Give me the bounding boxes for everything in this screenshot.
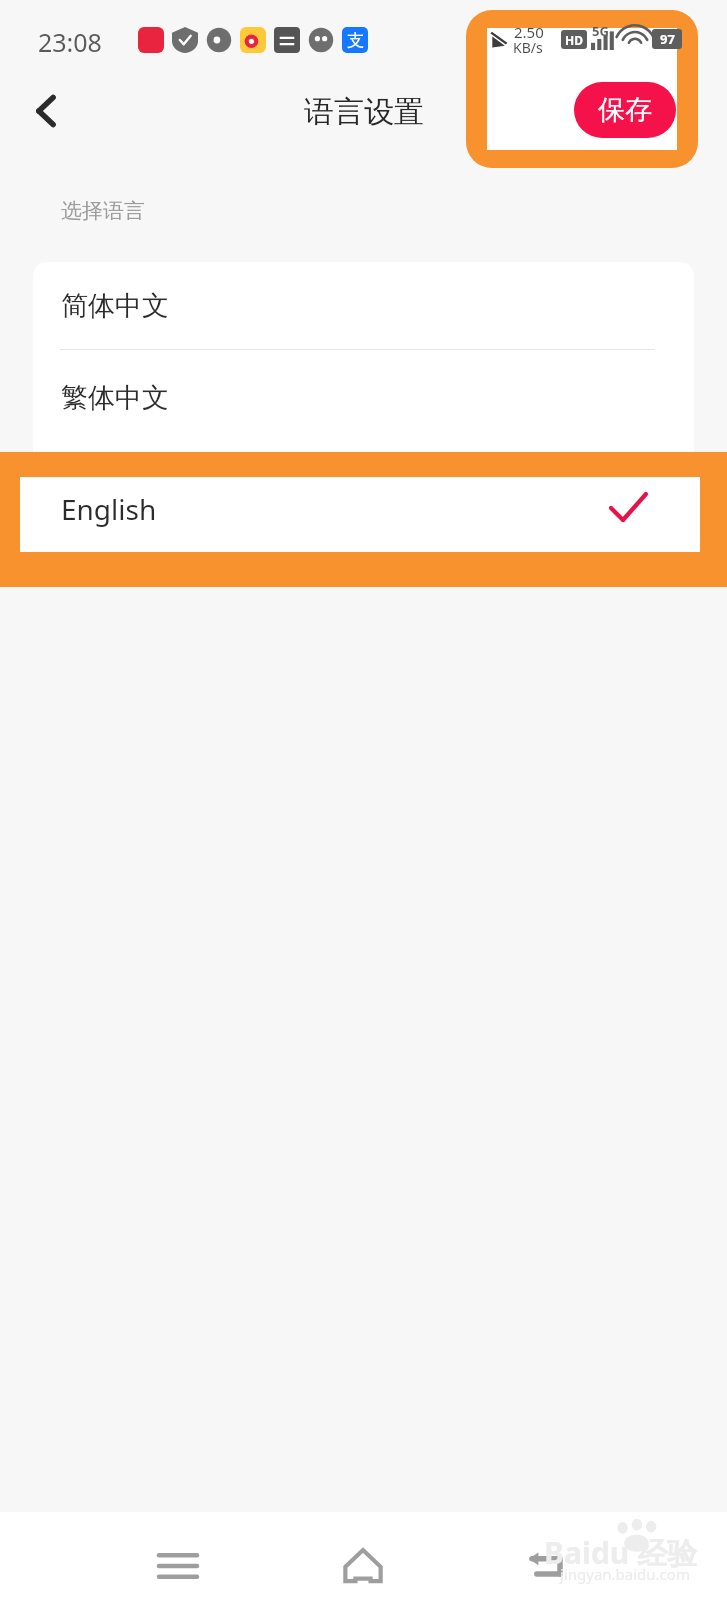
button[interactable]: Home <box>323 1526 403 1600</box>
staticText: HD <box>565 32 583 48</box>
staticText: 97 <box>660 30 675 48</box>
staticText: 保存 <box>598 93 652 127</box>
staticText: 繁体中文 <box>61 381 169 415</box>
staticText: 选择语言 <box>61 198 145 224</box>
staticText: Baidu 经验 <box>544 1532 698 1573</box>
button[interactable]: 繁体中文 <box>33 350 694 445</box>
button[interactable]: Back <box>508 1526 588 1600</box>
staticText: 5G <box>592 22 609 40</box>
button[interactable]: 简体中文 <box>33 262 694 349</box>
staticText: KB/s <box>513 38 543 57</box>
staticText: 2.50 <box>514 22 544 42</box>
staticText: 简体中文 <box>61 289 169 323</box>
staticText: 语言设置 <box>304 93 424 131</box>
staticText: 23:08 <box>38 25 102 59</box>
button[interactable]: Recent apps <box>138 1526 218 1600</box>
staticText: jingyan.baidu.com <box>560 1564 690 1584</box>
button[interactable]: 保存 <box>574 82 676 138</box>
staticText: 支 <box>347 30 364 51</box>
staticText: English <box>61 490 157 528</box>
button[interactable]: English <box>33 477 694 545</box>
button[interactable]: Back <box>14 78 80 144</box>
